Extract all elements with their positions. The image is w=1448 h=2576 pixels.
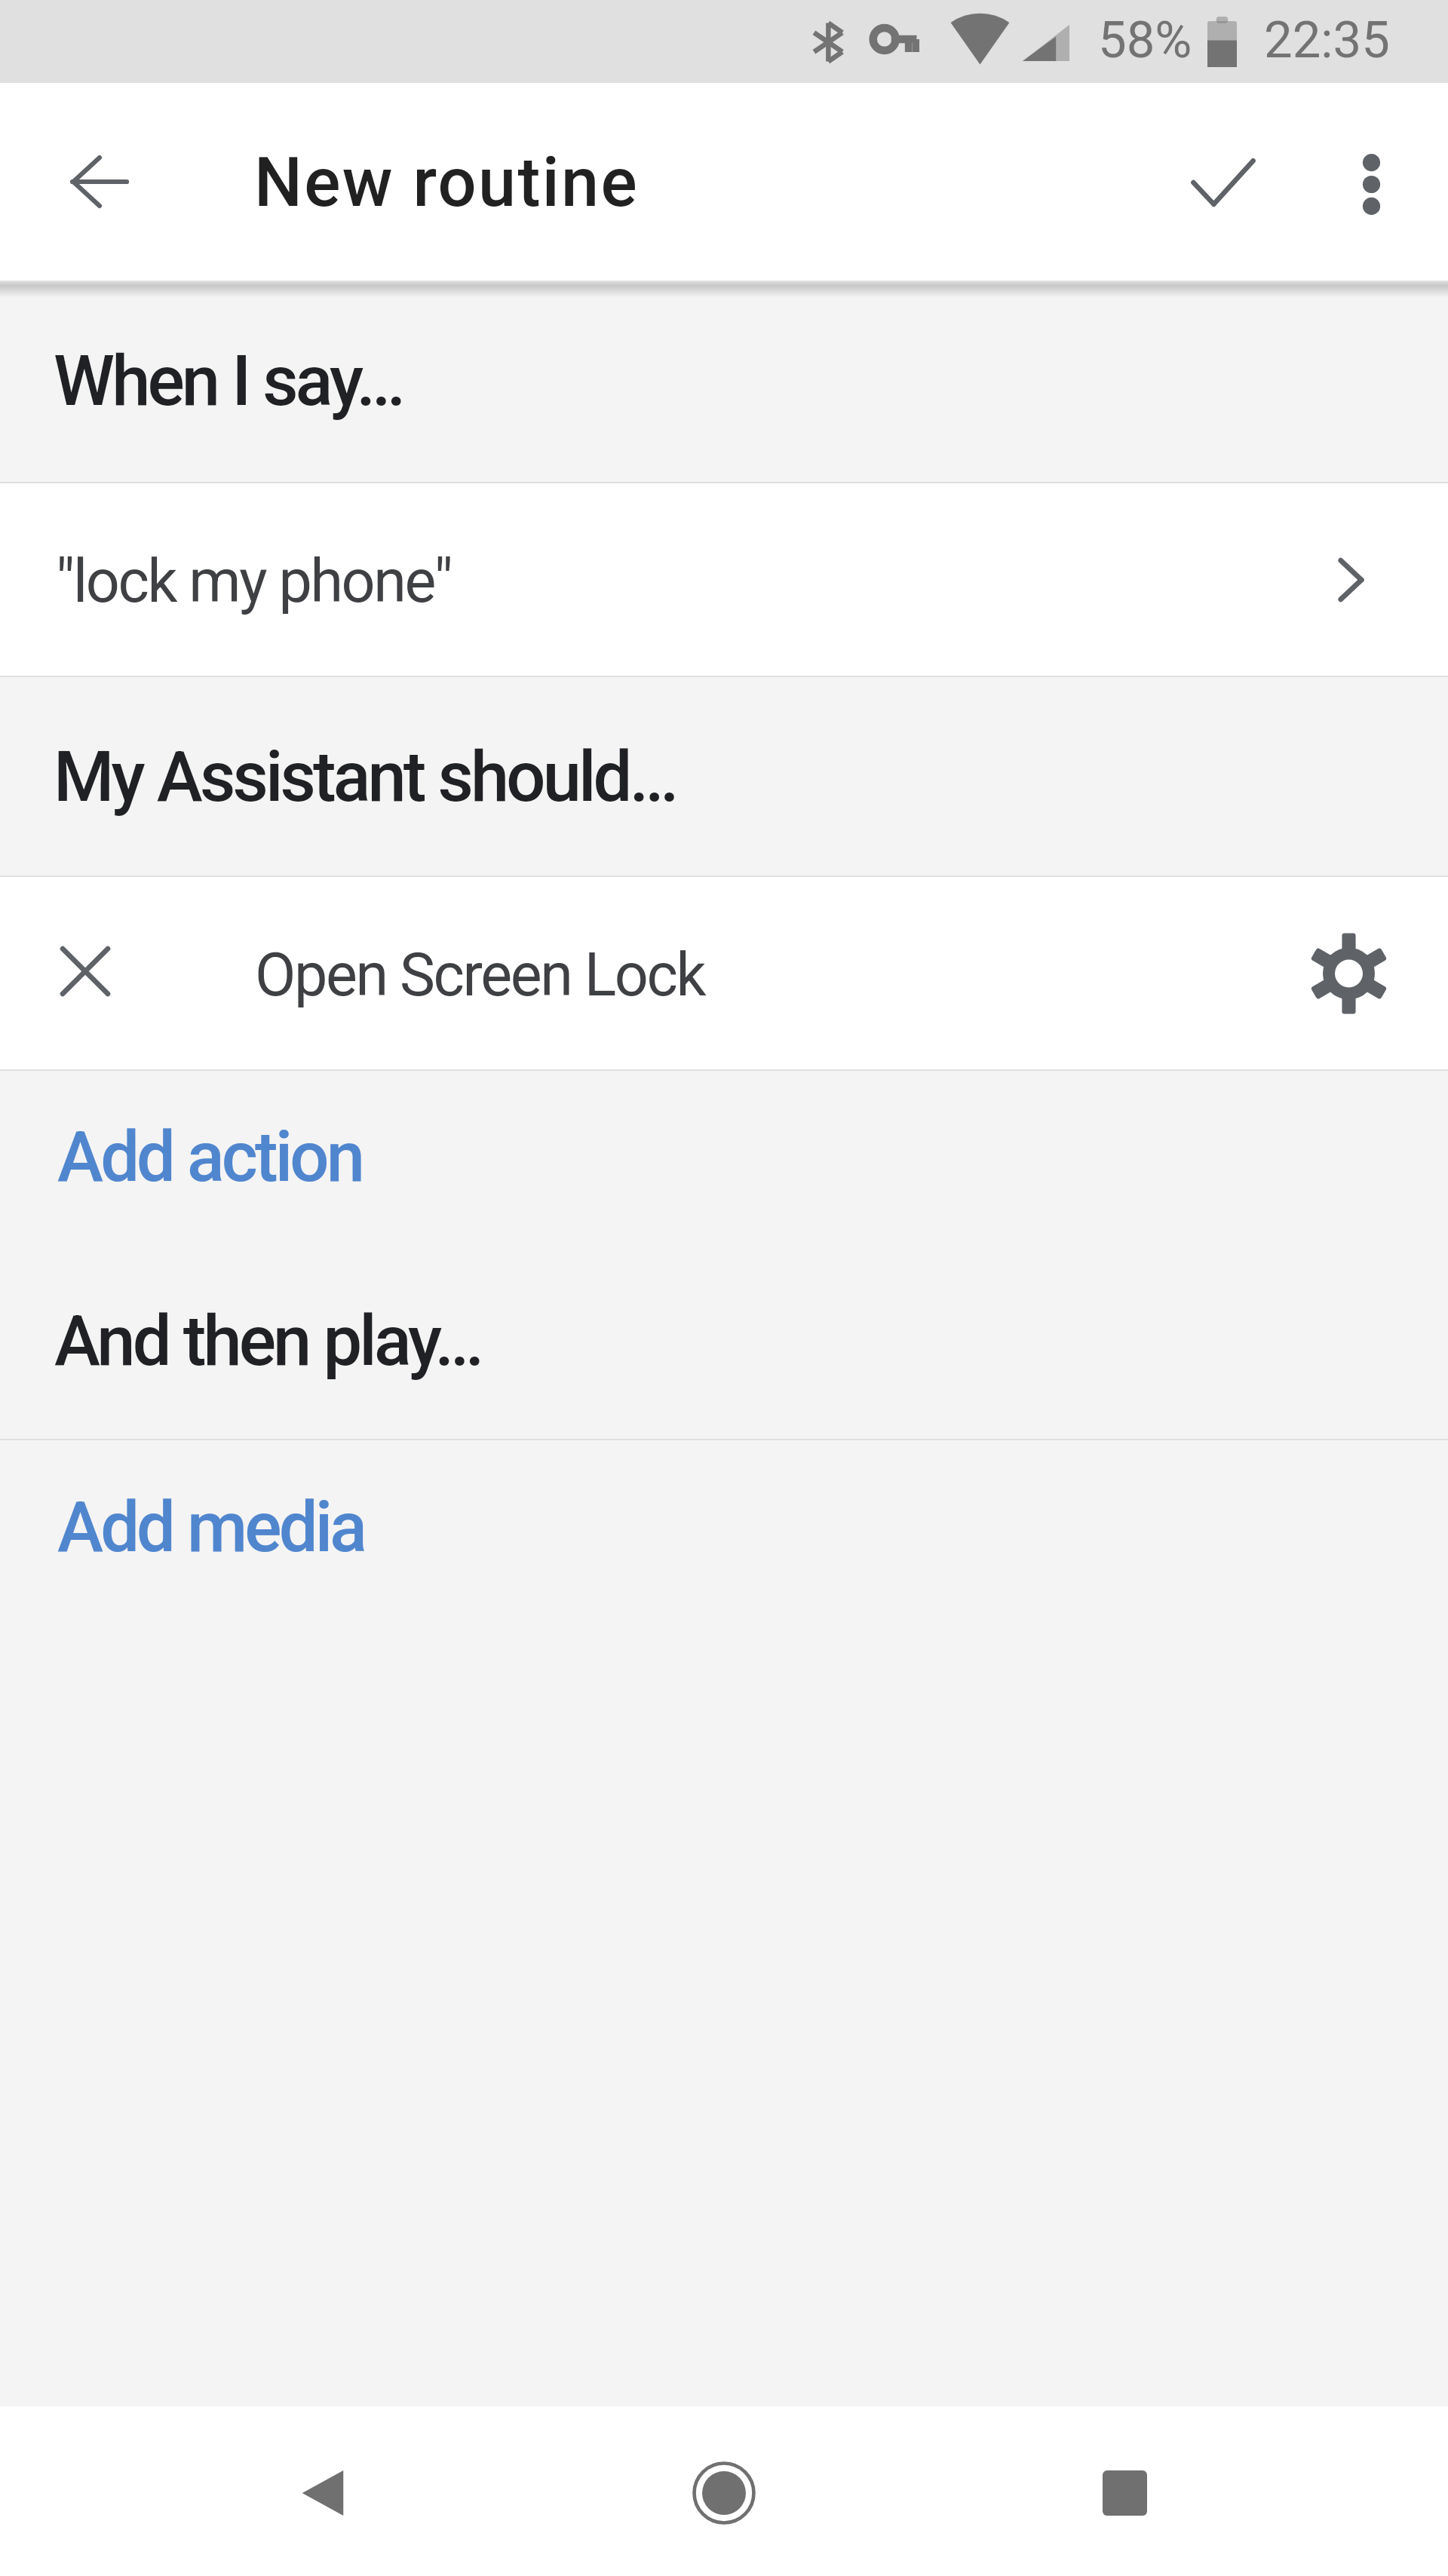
staticText: Add action [57,1117,363,1198]
button[interactable]: Action settings [1305,930,1392,1017]
staticText: 58% [1098,11,1192,70]
staticText: Add media [57,1487,365,1569]
button[interactable]: More options [1315,126,1427,238]
button[interactable]: Recent apps [1042,2410,1207,2576]
button[interactable]: Add media [0,1440,1448,1625]
staticText: New routine [254,143,639,222]
button[interactable]: Save routine [1167,126,1279,238]
staticText: And then play… [54,1301,481,1382]
button[interactable]: Home [641,2410,807,2576]
staticText: My Assistant should… [54,737,676,818]
button[interactable]: "lock my phone" [0,483,1448,676]
button[interactable]: Back [240,2410,406,2576]
staticText: 22:35 [1264,11,1390,70]
button[interactable]: Remove action [0,877,1448,1069]
staticText: Open Screen Lock [255,940,1305,1010]
staticText: "lock my phone" [56,547,1337,617]
staticText: When I say… [54,341,403,422]
button[interactable]: Navigate up [44,126,155,238]
button[interactable]: Add action [0,1071,1448,1255]
button[interactable]: Remove action [41,930,129,1017]
